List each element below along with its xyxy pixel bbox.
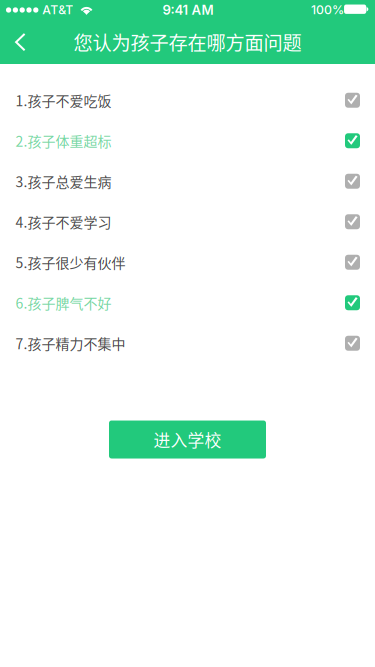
button[interactable]: 4.孩子不爱学习 <box>0 201 375 242</box>
button[interactable]: 5.孩子很少有伙伴 <box>0 242 375 282</box>
staticText: 1.孩子不爱吃饭 <box>16 90 112 110</box>
button[interactable]: 3.孩子总爱生病 <box>0 161 375 201</box>
button[interactable]: Back <box>0 20 40 64</box>
staticText: 7.孩子精力不集中 <box>16 333 126 353</box>
staticText: AT&T <box>42 2 73 17</box>
staticText: 9:41 AM <box>162 2 213 18</box>
staticText: 4.孩子不爱学习 <box>16 212 112 232</box>
staticText: 您认为孩子存在哪方面问题 <box>73 28 301 56</box>
button[interactable]: 7.孩子精力不集中 <box>0 323 375 363</box>
staticText: 3.孩子总爱生病 <box>16 171 112 191</box>
button[interactable]: 进入学校 <box>109 420 266 458</box>
staticText: 6.孩子脾气不好 <box>16 293 112 313</box>
button[interactable]: 2.孩子体重超标 <box>0 120 375 161</box>
button[interactable]: 6.孩子脾气不好 <box>0 282 375 323</box>
button[interactable]: 1.孩子不爱吃饭 <box>0 80 375 120</box>
staticText: 100% <box>311 2 344 17</box>
staticText: 2.孩子体重超标 <box>16 131 112 151</box>
staticText: 5.孩子很少有伙伴 <box>16 252 126 272</box>
staticText: 进入学校 <box>153 427 221 452</box>
